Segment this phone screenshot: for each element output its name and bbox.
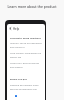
button[interactable]: Back — [7, 26, 13, 31]
button[interactable]: How do I set up my new device — [10, 42, 43, 49]
button[interactable]: Returns and warranty info — [10, 88, 43, 91]
staticText: Frequently asked questions — [10, 37, 41, 40]
button[interactable]: Where can I find the manual — [10, 62, 43, 69]
staticText: Learn more about the product — [0, 4, 64, 9]
button[interactable]: What should I know about the — [10, 52, 43, 59]
staticText: Shipping and delivery times — [10, 84, 39, 87]
button[interactable]: Shipping and delivery times — [10, 84, 43, 87]
staticText: How do I set up my new device — [10, 42, 42, 45]
staticText: Where can I find the manual — [10, 62, 40, 65]
staticText: Before you buy — [10, 78, 27, 81]
staticText: and support — [10, 66, 23, 69]
staticText: and connect it — [10, 46, 25, 49]
staticText: battery life — [10, 56, 22, 59]
staticText: Help — [13, 27, 20, 31]
button[interactable]: Contact support — [14, 94, 17, 97]
staticText: What should I know about the — [10, 52, 41, 55]
button[interactable]: Back — [7, 26, 45, 31]
staticText: Returns and warranty info — [10, 88, 37, 91]
